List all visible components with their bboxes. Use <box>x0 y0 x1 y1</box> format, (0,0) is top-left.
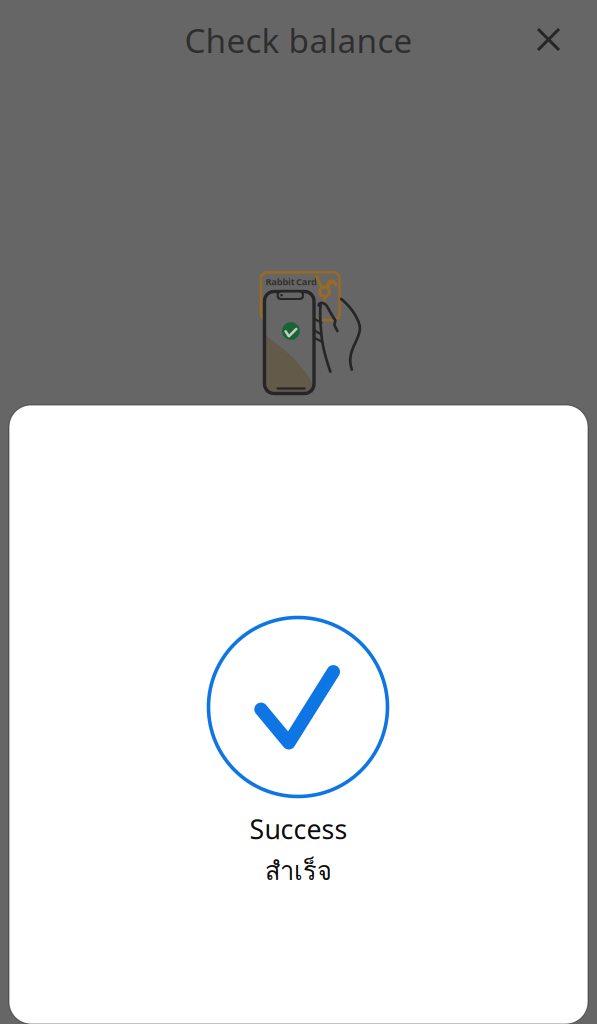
button[interactable]: Close <box>519 10 578 69</box>
staticText: Success <box>249 811 347 847</box>
staticText: สำเร็จ <box>265 851 332 891</box>
staticText: Rabbit Card <box>265 275 317 288</box>
staticText: Check balance <box>184 18 412 62</box>
